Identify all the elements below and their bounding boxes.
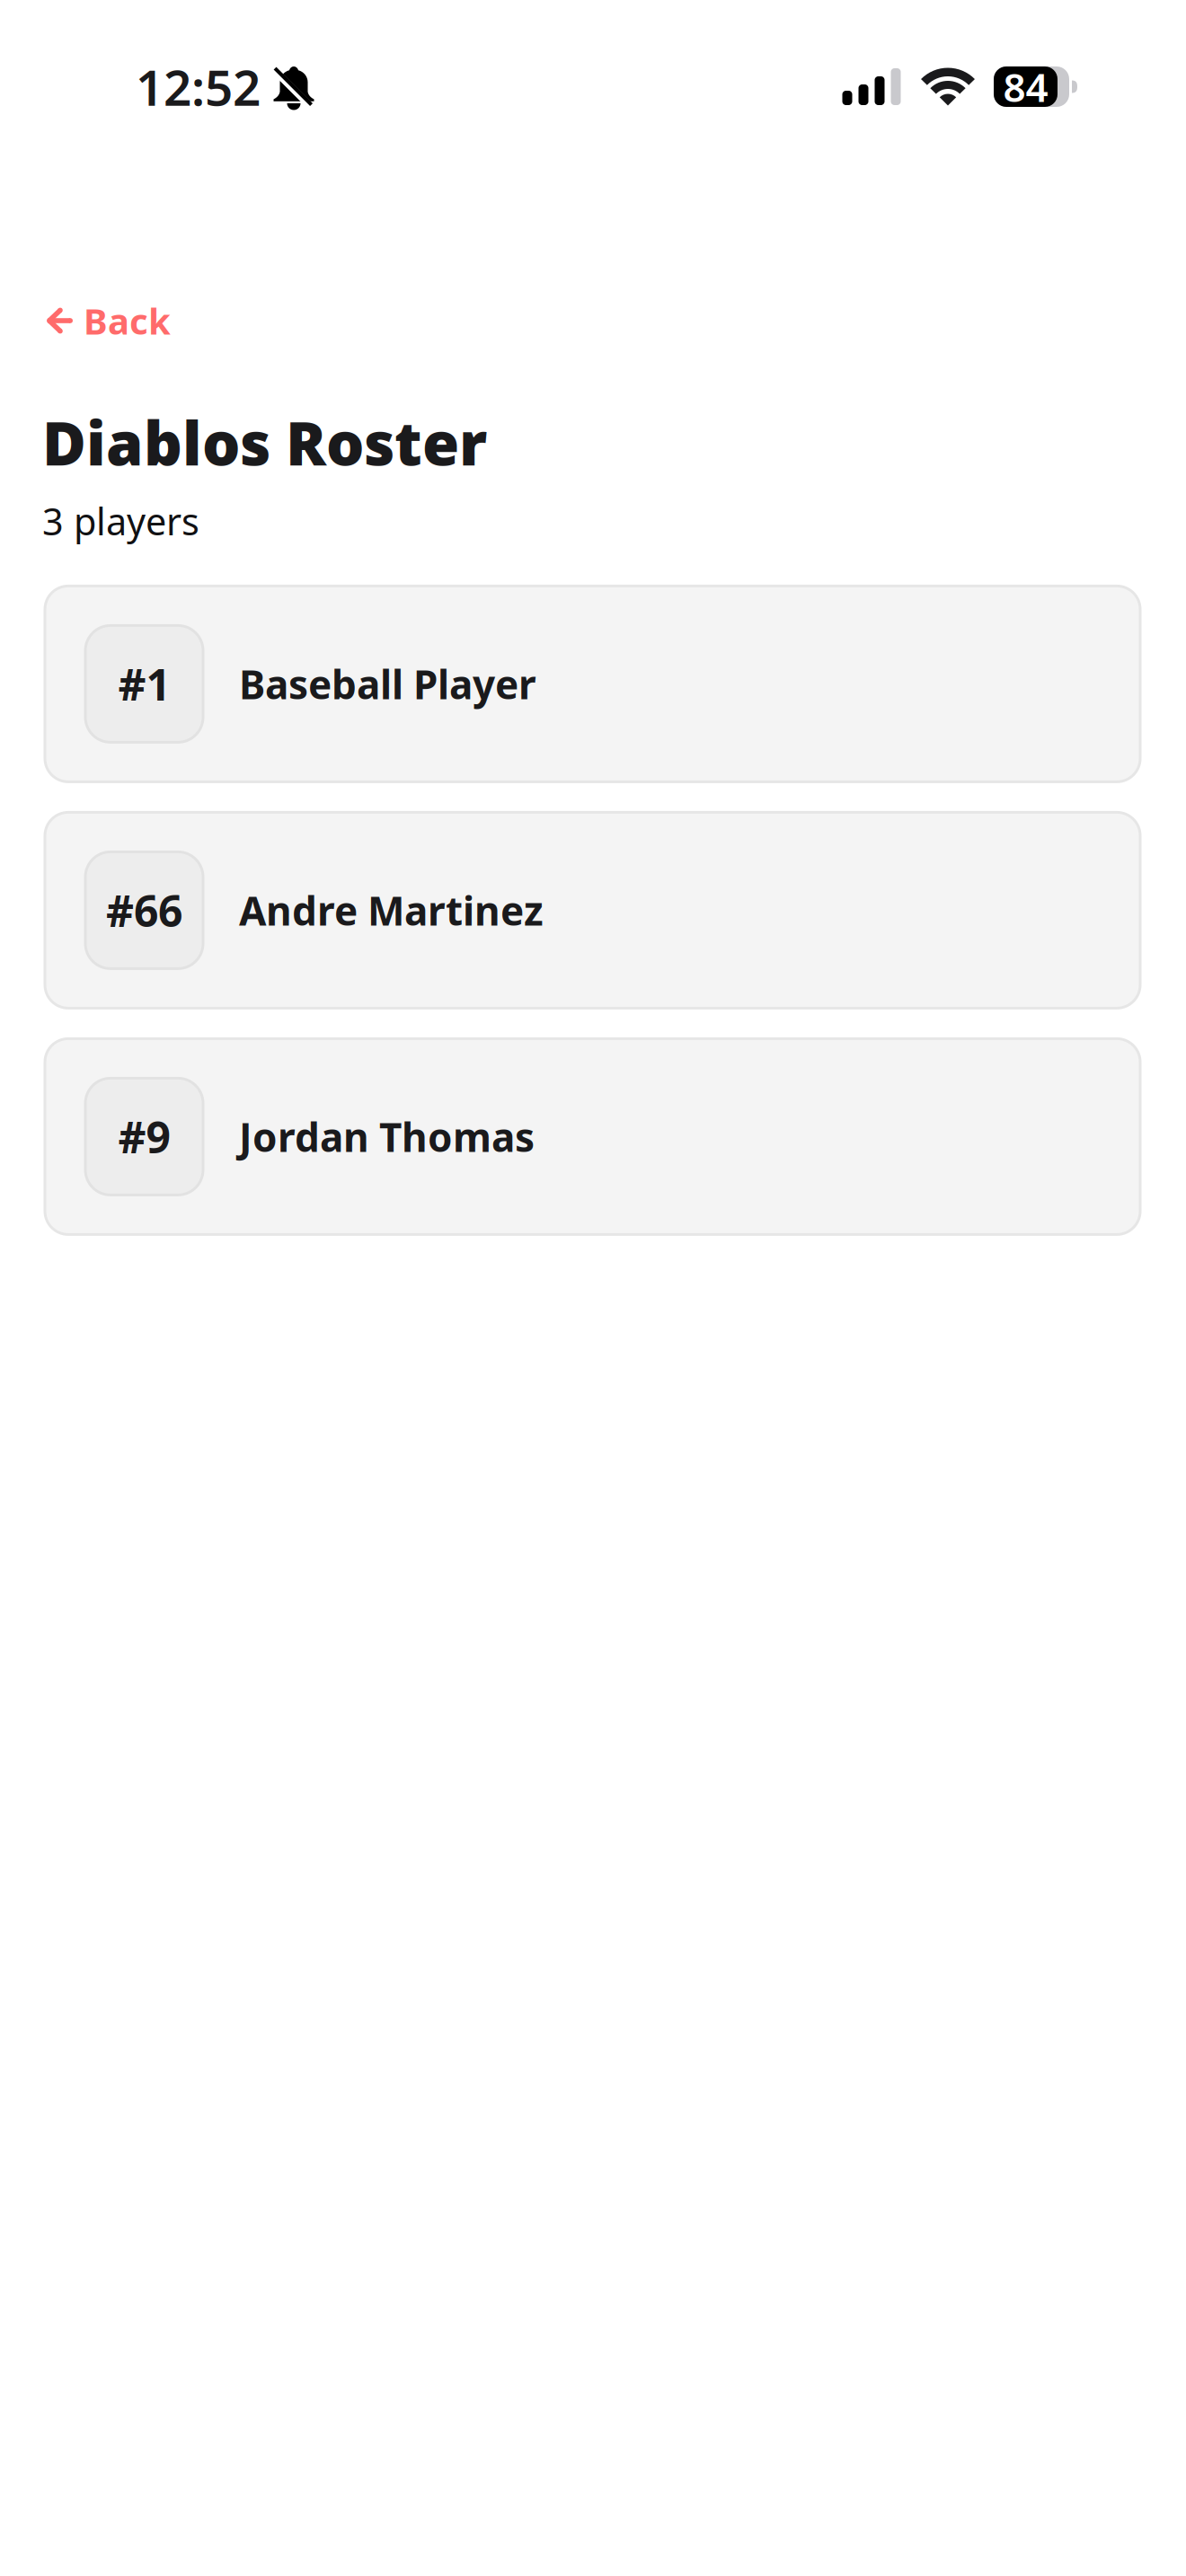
button[interactable]: #1 <box>45 586 1140 782</box>
staticText: 12:52 <box>136 54 261 119</box>
staticText: Diablos Roster <box>42 402 487 482</box>
staticText: 84 <box>1003 60 1048 113</box>
staticText: #9 <box>118 1108 170 1165</box>
staticText: Back <box>84 297 171 344</box>
staticText: Baseball Player <box>239 658 536 710</box>
staticText: #1 <box>118 655 170 712</box>
staticText: Andre Martinez <box>239 884 544 936</box>
button[interactable]: #9 <box>45 1039 1140 1234</box>
button[interactable]: Back <box>0 280 1186 361</box>
staticText: Jordan Thomas <box>239 1110 535 1163</box>
button[interactable]: #66 <box>45 812 1140 1008</box>
staticText: 3 players <box>42 496 199 546</box>
staticText: #66 <box>106 882 182 939</box>
